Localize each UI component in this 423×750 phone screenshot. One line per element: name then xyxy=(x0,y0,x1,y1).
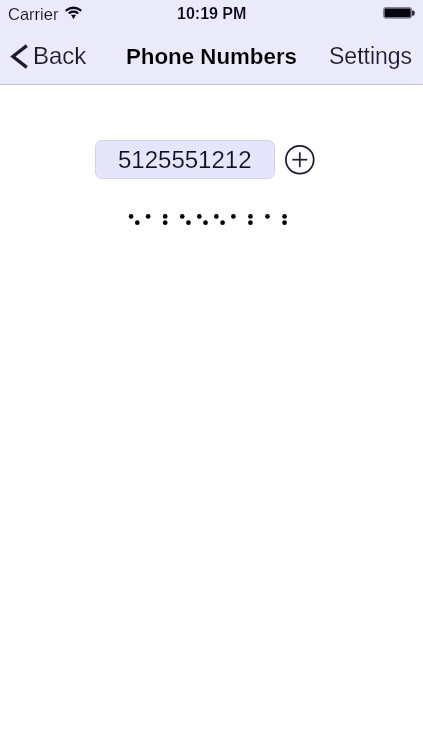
staticText: Carrier xyxy=(8,5,59,23)
button[interactable]: Back xyxy=(4,40,99,77)
button[interactable]: Settings xyxy=(317,39,423,75)
button[interactable]: Add phone number xyxy=(284,144,315,175)
staticText: 10:19 PM xyxy=(177,5,247,23)
staticText: Back xyxy=(33,42,87,69)
staticText: 5125551212 xyxy=(118,146,252,173)
staticText: Phone Numbers xyxy=(126,44,297,69)
button[interactable]: 5125551212 xyxy=(95,140,275,179)
staticText: Settings xyxy=(329,43,413,69)
